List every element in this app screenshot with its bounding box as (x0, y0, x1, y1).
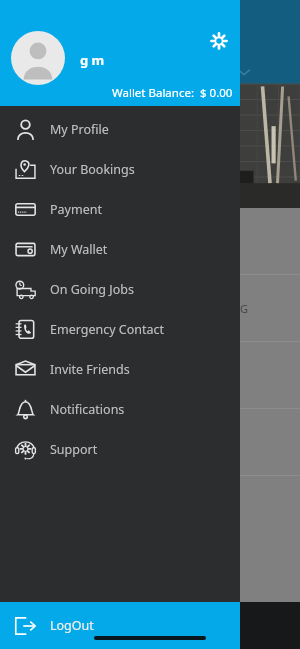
staticText: My Profile (50, 121, 109, 138)
button[interactable]: Emergency Contact (0, 309, 240, 349)
button[interactable]: My Profile (0, 109, 240, 149)
button[interactable]: Payment (0, 189, 240, 229)
staticText: Notifications (50, 401, 125, 418)
button[interactable]: Invite Friends (0, 349, 240, 389)
button[interactable]: Support (0, 429, 240, 469)
button[interactable]: LogOut (0, 602, 240, 649)
staticText: Invite Friends (50, 361, 130, 378)
button[interactable]: On Going Jobs (0, 269, 240, 309)
staticText: Emergency Contact (50, 321, 165, 338)
staticText: Payment (50, 201, 102, 218)
staticText: Support (50, 441, 98, 458)
button[interactable]: Notifications (0, 389, 240, 429)
button[interactable]: Select (0, 342, 300, 409)
staticText: LogOut (50, 617, 94, 634)
button[interactable]: Select (0, 208, 300, 275)
staticText: Wallet Balance: $ 0.00 (112, 85, 233, 101)
staticText: On Going Jobs (50, 281, 134, 298)
button[interactable]: Select (0, 476, 300, 543)
staticText: My Wallet (50, 241, 108, 258)
button[interactable]: Settings (206, 28, 232, 54)
button[interactable]: My Wallet (0, 229, 240, 269)
button[interactable]: Profile photo (11, 31, 65, 85)
staticText: G (240, 301, 249, 316)
staticText: Your Bookings (50, 161, 135, 178)
button[interactable]: G (0, 275, 300, 342)
button[interactable]: Your Bookings (0, 149, 240, 189)
staticText: g m (80, 51, 105, 69)
button[interactable]: Select (0, 409, 300, 476)
